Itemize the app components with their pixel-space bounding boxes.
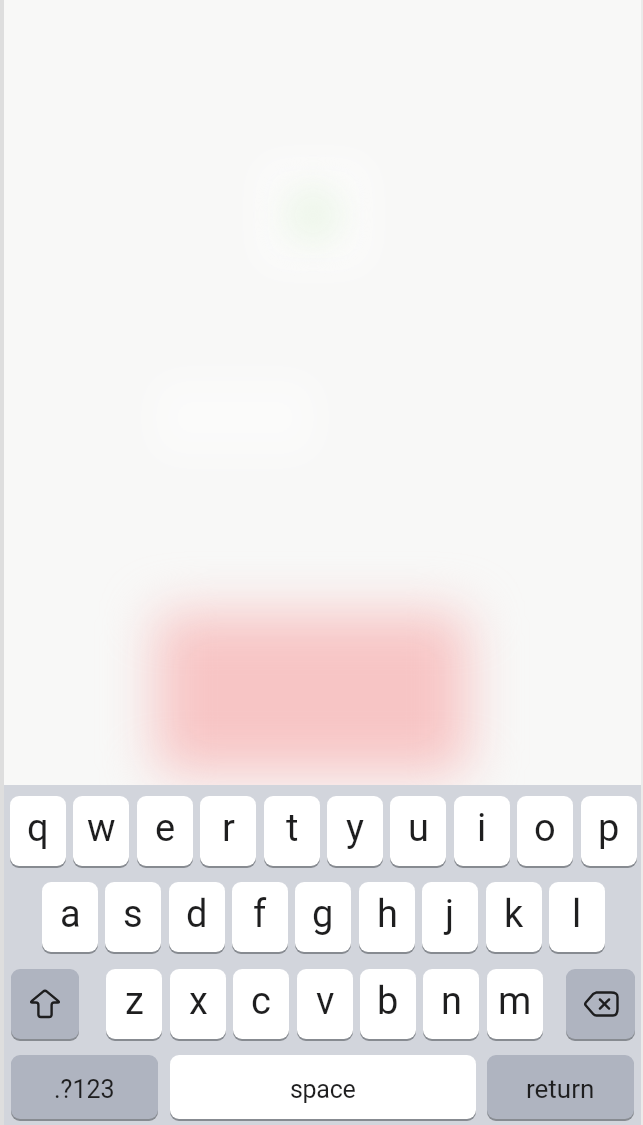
staticText: u [408, 806, 429, 851]
button[interactable]: j [422, 882, 478, 952]
button[interactable]: p [581, 796, 637, 866]
button[interactable]: a [42, 882, 98, 952]
button[interactable]: space [170, 1055, 476, 1119]
button[interactable]: .?123 [11, 1055, 158, 1119]
staticText: v [316, 979, 335, 1024]
staticText: f [253, 892, 267, 937]
staticText: .?123 [54, 1075, 115, 1104]
button[interactable]: v [297, 969, 353, 1039]
staticText: p [598, 806, 620, 851]
staticText: g [312, 892, 334, 937]
button[interactable]: b [360, 969, 416, 1039]
button[interactable]: c [233, 969, 289, 1039]
button[interactable]: e [137, 796, 193, 866]
staticText: d [186, 892, 208, 937]
button[interactable]: w [73, 796, 129, 866]
button[interactable]: s [105, 882, 161, 952]
button[interactable]: r [200, 796, 256, 866]
staticText: w [87, 806, 116, 851]
button[interactable]: n [423, 969, 479, 1039]
staticText: j [445, 892, 455, 937]
staticText: k [504, 892, 524, 937]
button[interactable]: q [10, 796, 66, 866]
staticText: x [189, 979, 208, 1024]
staticText: o [534, 806, 556, 851]
staticText: i [477, 806, 487, 851]
button[interactable] [11, 969, 79, 1039]
staticText: c [251, 979, 271, 1024]
staticText: z [125, 979, 144, 1024]
button[interactable]: return [487, 1055, 634, 1119]
button[interactable]: u [390, 796, 446, 866]
button[interactable]: h [359, 882, 415, 952]
button[interactable]: x [170, 969, 226, 1039]
button[interactable]: k [486, 882, 542, 952]
staticText: m [498, 979, 532, 1024]
staticText: e [155, 806, 176, 851]
staticText: return [526, 1074, 595, 1104]
button[interactable]: m [487, 969, 543, 1039]
button[interactable]: l [549, 882, 605, 952]
button[interactable]: o [517, 796, 573, 866]
staticText: b [377, 979, 399, 1024]
staticText: y [346, 806, 364, 851]
staticText: l [572, 892, 582, 937]
staticText: s [123, 892, 143, 937]
button[interactable]: t [264, 796, 320, 866]
staticText: h [377, 892, 398, 937]
button[interactable]: i [454, 796, 510, 866]
staticText: t [286, 806, 299, 851]
button[interactable]: d [169, 882, 225, 952]
staticText: a [60, 892, 81, 937]
button[interactable]: z [106, 969, 162, 1039]
button[interactable] [566, 969, 635, 1039]
button[interactable]: f [232, 882, 288, 952]
button[interactable]: g [295, 882, 351, 952]
staticText: space [290, 1075, 356, 1104]
button[interactable]: y [327, 796, 383, 866]
staticText: q [27, 806, 49, 851]
staticText: n [441, 979, 462, 1024]
staticText: r [222, 806, 235, 851]
